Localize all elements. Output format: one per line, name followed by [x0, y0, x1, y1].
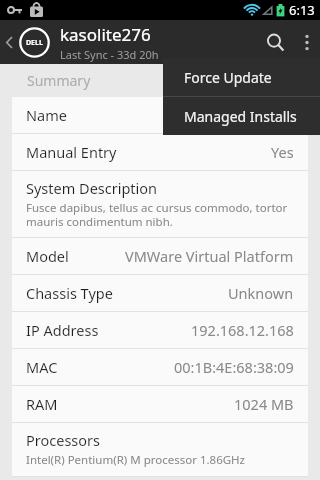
button[interactable]: Navigate up: [0, 20, 56, 64]
button[interactable]: Search: [256, 20, 294, 64]
staticText: Processors: [26, 430, 100, 450]
button[interactable]: Managed Installs: [163, 97, 320, 135]
staticText: RAM: [26, 394, 58, 414]
button[interactable]: RAM: [12, 386, 308, 422]
staticText: Summary: [27, 71, 91, 90]
staticText: Intel(R) Pentium(R) M processor 1.86GHz: [26, 452, 246, 468]
button[interactable]: IP Address: [12, 312, 308, 348]
staticText: 00:1B:4E:68:38:09: [174, 357, 294, 377]
staticText: 6:13: [289, 1, 315, 19]
staticText: MAC: [26, 357, 58, 377]
staticText: Manual Entry: [26, 142, 117, 162]
staticText: DELL: [26, 38, 43, 48]
staticText: IP Address: [26, 320, 99, 340]
button[interactable]: Model: [12, 238, 308, 274]
button[interactable]: MAC: [12, 349, 308, 385]
staticText: 1024 MB: [234, 394, 294, 414]
button[interactable]: Processors: [12, 423, 308, 476]
staticText: Model: [26, 246, 69, 266]
button[interactable]: Force Update: [163, 58, 320, 96]
button[interactable]: More options: [294, 20, 320, 64]
staticText: kasolite276: [60, 23, 151, 46]
button[interactable]: Name: [12, 97, 308, 133]
button[interactable]: Manual Entry: [12, 134, 308, 170]
staticText: Name: [26, 105, 67, 125]
staticText: Chassis Type: [26, 283, 113, 303]
staticText: 192.168.12.168: [191, 320, 294, 340]
staticText: Unknown: [228, 283, 294, 303]
staticText: Last Sync - 33d 20h: [60, 47, 159, 62]
staticText: VMWare Virtual Platform: [125, 246, 294, 266]
button[interactable]: System Description: [12, 171, 308, 237]
staticText: Yes: [271, 142, 294, 162]
staticText: Force Update: [184, 68, 272, 87]
staticText: Fusce dapibus, tellus ac cursus commodo,…: [26, 200, 288, 229]
button[interactable]: Chassis Type: [12, 275, 308, 311]
staticText: System Description: [26, 178, 158, 198]
staticText: Managed Installs: [184, 107, 297, 126]
